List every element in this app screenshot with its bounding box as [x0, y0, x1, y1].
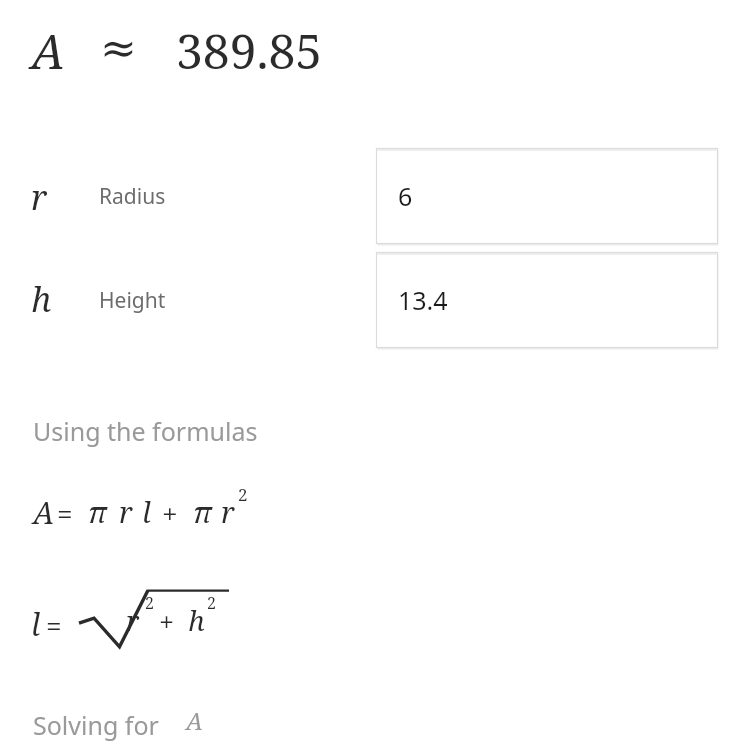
staticText: h	[31, 276, 52, 322]
staticText: ≈	[100, 22, 137, 73]
button[interactable]: Height value	[376, 252, 718, 348]
staticText: =	[57, 494, 73, 532]
staticText: 2	[145, 592, 154, 614]
staticText: A	[31, 18, 65, 83]
staticText: π	[88, 492, 107, 531]
staticText: Using the formulas	[33, 414, 258, 448]
staticText: r	[119, 492, 133, 531]
staticText: Radius	[99, 182, 166, 211]
staticText: Solving for	[33, 708, 159, 742]
staticText: l	[142, 492, 151, 531]
staticText: +	[162, 494, 178, 532]
staticText: π	[193, 492, 212, 531]
staticText: r	[221, 492, 235, 531]
staticText: Height	[99, 286, 166, 315]
staticText: l	[31, 604, 41, 645]
staticText: r	[126, 601, 140, 639]
staticText: =	[46, 606, 62, 644]
staticText: A	[186, 704, 203, 737]
staticText: 2	[238, 483, 248, 506]
staticText: h	[188, 601, 205, 639]
button[interactable]: Radius value	[376, 148, 718, 244]
staticText: 389.85	[176, 18, 323, 83]
staticText: +	[159, 603, 175, 640]
staticText: A	[33, 492, 55, 533]
staticText: r	[31, 174, 47, 220]
staticText: 6	[398, 179, 413, 213]
staticText: 13.4	[398, 283, 448, 317]
staticText: 2	[207, 592, 216, 614]
